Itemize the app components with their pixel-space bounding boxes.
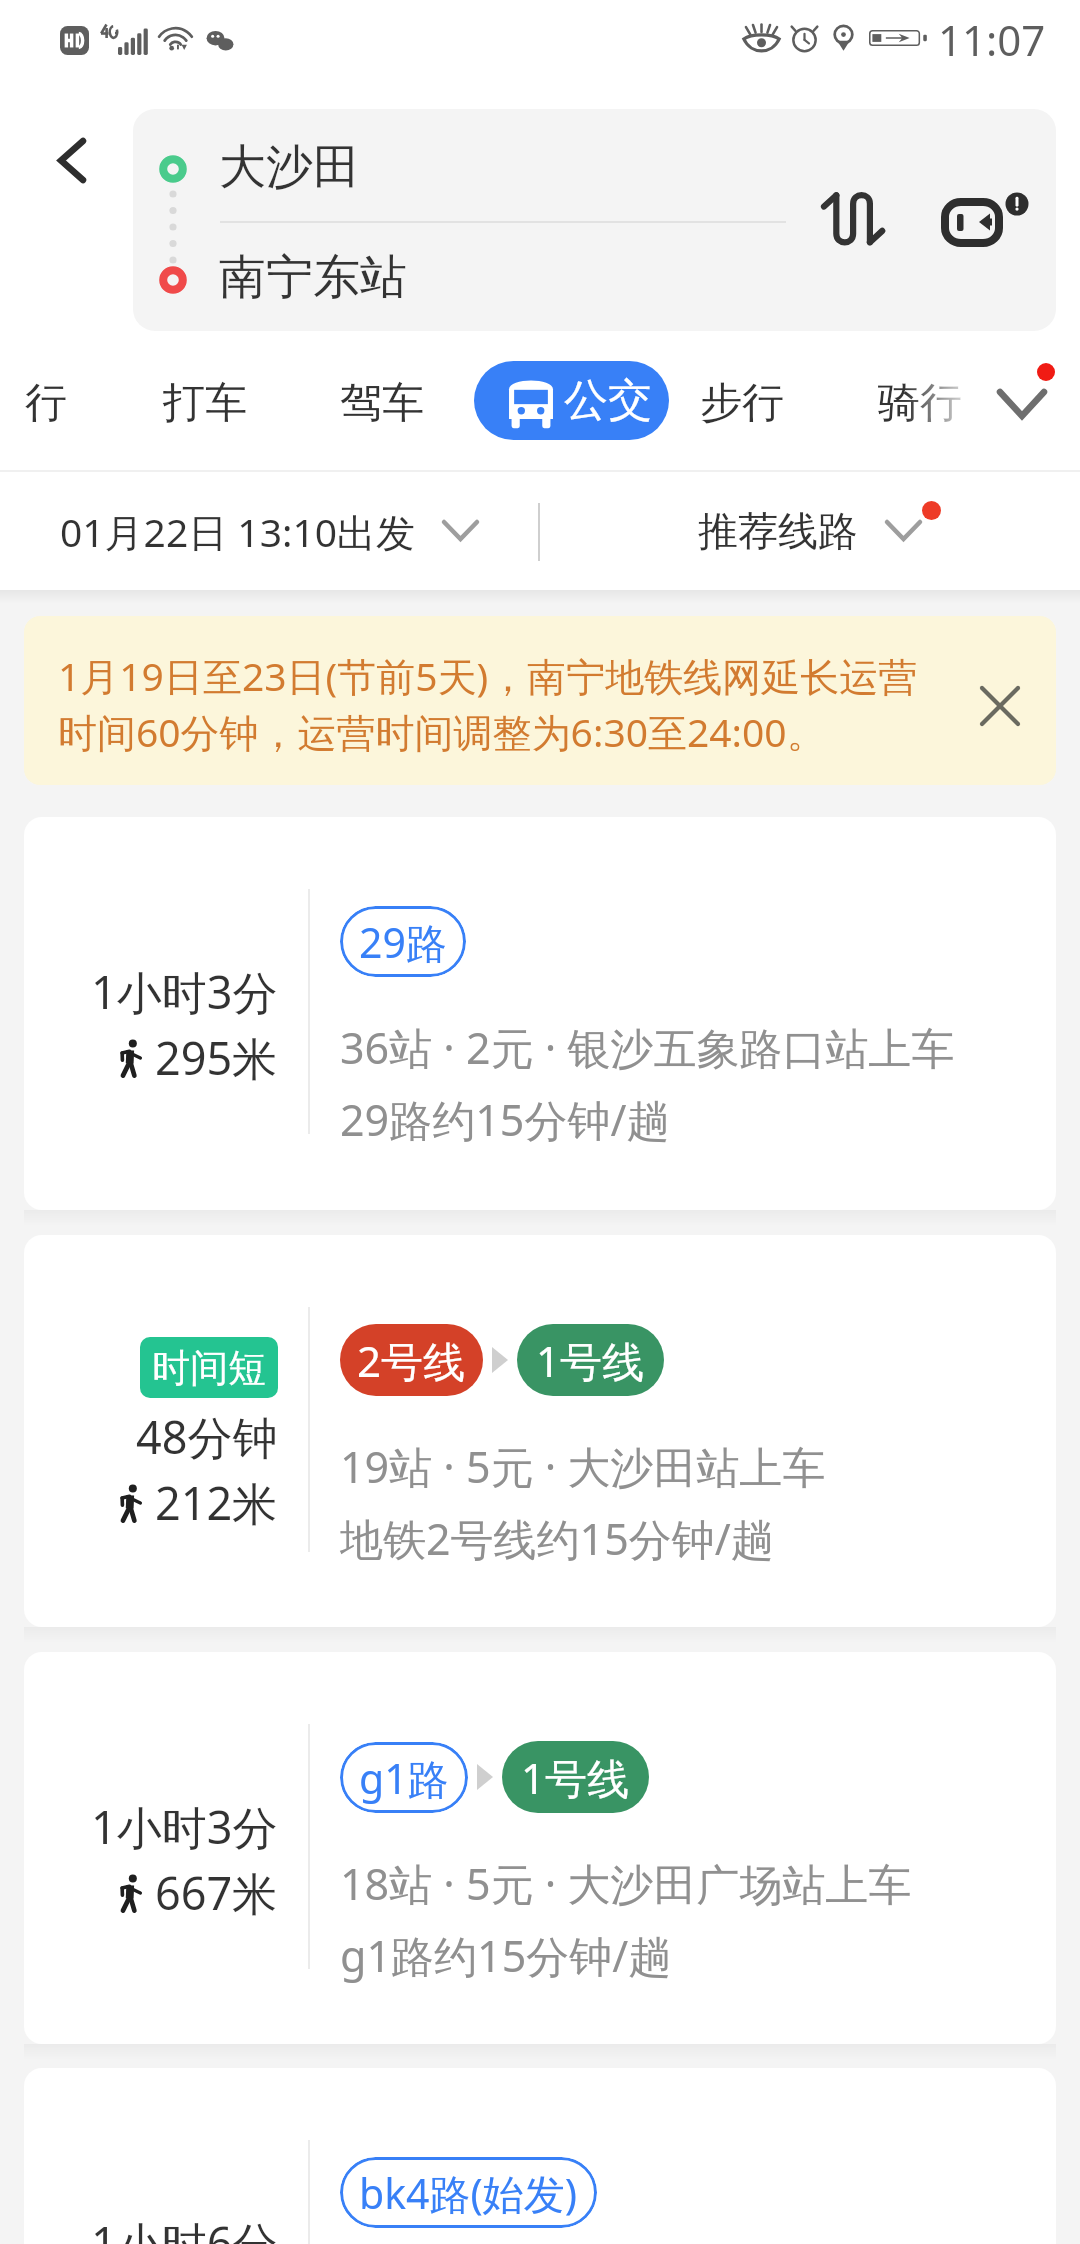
staticText: 212米: [155, 1472, 278, 1533]
staticText: 1小时3分: [91, 961, 278, 1022]
staticText: 48分钟: [136, 1406, 278, 1467]
button[interactable]: 时间短: [24, 1235, 1056, 1627]
button[interactable]: 公交: [474, 361, 669, 440]
staticText: 11:07: [938, 11, 1046, 67]
staticText: 19站 · 5元 · 大沙田站上车: [340, 1437, 826, 1496]
staticText: 推荐线路: [698, 506, 858, 556]
button[interactable]: 大沙田: [133, 109, 1056, 331]
staticText: 地铁2号线约15分钟/趟: [340, 1509, 774, 1568]
button[interactable]: 打车: [145, 351, 265, 455]
staticText: g1路约15分钟/趟: [340, 1926, 672, 1985]
button[interactable]: Back: [12, 109, 133, 331]
staticText: 2号线: [357, 1332, 466, 1389]
button[interactable]: 1月19日至23日(节前5天)，南宁地铁线网延长运营: [24, 616, 1056, 785]
button[interactable]: 1小时3分: [24, 1652, 1056, 2044]
staticText: 1小时3分: [91, 1796, 278, 1857]
staticText: 行: [25, 377, 67, 430]
staticText: 01月22日 13:10出发: [60, 505, 416, 558]
staticText: 36站 · 2元 · 银沙五象路口站上车: [340, 1018, 955, 1077]
button[interactable]: 1小时3分: [24, 817, 1056, 1210]
staticText: 1小时6分: [91, 2212, 278, 2244]
button[interactable]: 驾车: [322, 351, 442, 455]
button[interactable]: 01月22日 13:10出发: [30, 478, 510, 584]
button[interactable]: 推荐线路: [660, 478, 990, 584]
staticText: 29路: [359, 914, 447, 970]
staticText: 公交: [564, 373, 652, 428]
staticText: 大沙田: [219, 138, 360, 197]
staticText: 步行: [700, 377, 784, 430]
staticText: 29路约15分钟/趟: [340, 1090, 670, 1149]
button[interactable]: Close notice: [948, 654, 1052, 758]
staticText: 时间短: [152, 1344, 266, 1392]
staticText: 骑行: [878, 377, 962, 430]
button[interactable]: 1小时6分: [24, 2068, 1056, 2244]
staticText: 1号线: [536, 1332, 645, 1389]
staticText: 时间60分钟，运营时间调整为6:30至24:00。: [58, 705, 826, 758]
staticText: 南宁东站: [219, 248, 407, 307]
staticText: 打车: [163, 377, 247, 430]
button[interactable]: 骑行: [860, 351, 980, 455]
staticText: 18站 · 5元 · 大沙田广场站上车: [340, 1854, 912, 1913]
staticText: 1号线: [521, 1749, 630, 1806]
staticText: 295米: [155, 1027, 278, 1088]
staticText: 667米: [155, 1862, 278, 1923]
button[interactable]: 行: [0, 351, 92, 455]
staticText: 1月19日至23日(节前5天)，南宁地铁线网延长运营: [58, 649, 918, 702]
button[interactable]: Swap start and destination: [798, 154, 918, 286]
staticText: bk4路(始发): [359, 2165, 578, 2221]
button[interactable]: Transit card info: [923, 154, 1043, 286]
button[interactable]: 步行: [682, 351, 802, 455]
button[interactable]: More travel modes: [965, 345, 1080, 457]
staticText: 驾车: [340, 377, 424, 430]
staticText: g1路: [359, 1750, 449, 1806]
